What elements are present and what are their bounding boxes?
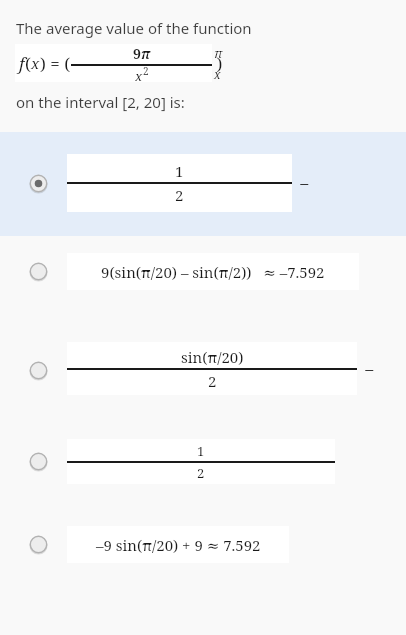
staticText: x [135,67,143,82]
staticText: 2 [143,64,149,78]
staticText: 1 [197,442,205,460]
staticText: sin(π/20) [181,347,244,367]
staticText: 2 [197,464,205,482]
staticText: 2 [175,185,184,205]
staticText: The average value of the function [16,18,252,38]
staticText: 2 [208,371,217,391]
staticText: 1 [175,161,184,181]
staticText: on the interval [2, 20] is: [16,92,185,112]
staticText: x [31,53,40,73]
staticText: 9(sin(π/20) – sin(π/2)) ≈ –7.592 [101,262,325,282]
button[interactable]: 1 [0,132,406,236]
staticText: f [19,52,25,75]
button[interactable]: 9(sin(π/20) – sin(π/2)) ≈ –7.592 [0,248,406,324]
staticText: –9 sin(π/20) + 9 ≈ 7.592 [96,535,261,555]
button[interactable]: sin(π/20) [0,336,406,424]
staticText: π [141,44,151,63]
button[interactable]: –9 sin(π/20) + 9 ≈ 7.592 [0,522,406,592]
button[interactable]: 1 [0,434,406,512]
staticText: ) = ( [40,52,71,75]
staticText: ( [25,52,31,75]
staticText: 9 [133,44,141,63]
